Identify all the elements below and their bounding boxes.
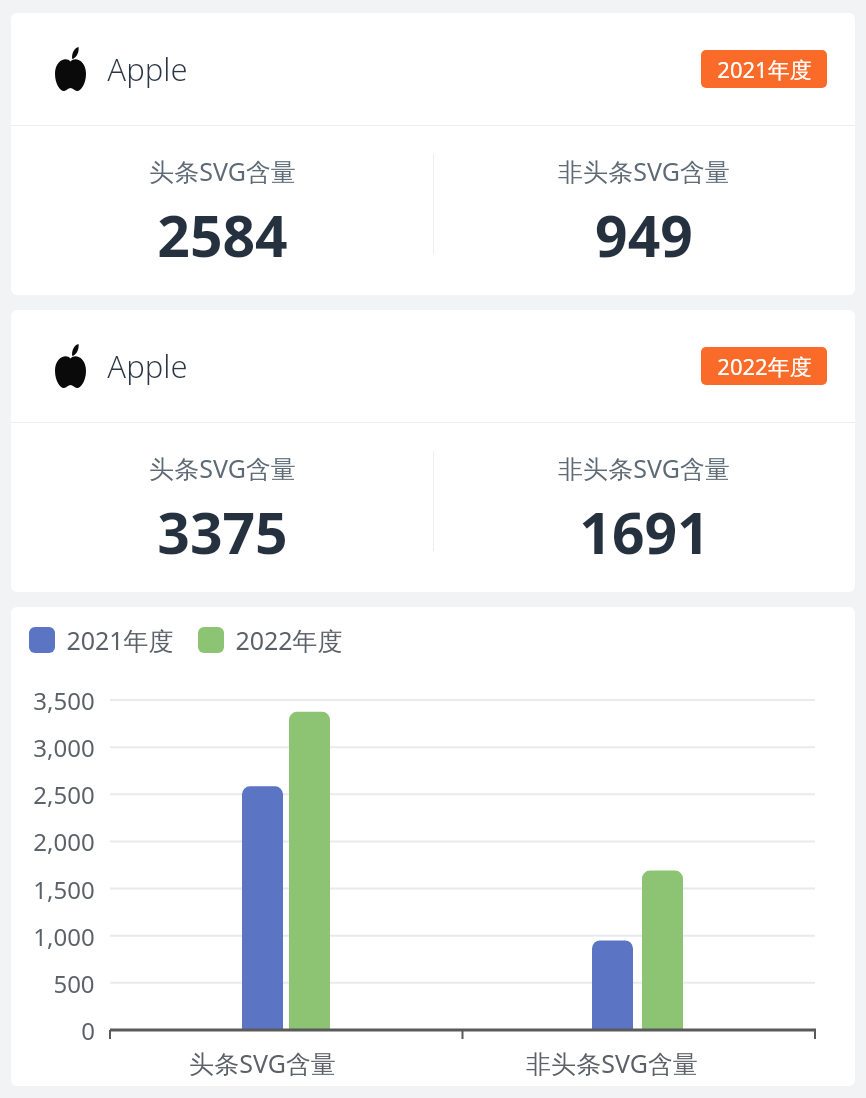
staticText: 3375 bbox=[157, 493, 288, 571]
staticText: 2021年度 bbox=[717, 54, 812, 84]
button[interactable]: 2022年度 bbox=[701, 347, 827, 385]
staticText: 1691 bbox=[579, 493, 710, 571]
staticText: Apple bbox=[107, 345, 188, 387]
staticText: 2022年度 bbox=[717, 351, 812, 381]
staticText: 2021年度 bbox=[66, 623, 174, 657]
staticText: 949 bbox=[595, 196, 693, 274]
staticText: 2,000 bbox=[33, 825, 95, 858]
button[interactable]: 非头条SVG含量 bbox=[433, 423, 855, 592]
staticText: 头条SVG含量 bbox=[149, 154, 296, 188]
other: Apple logo bbox=[55, 344, 86, 388]
staticText: 3,500 bbox=[33, 684, 95, 717]
staticText: 500 bbox=[53, 967, 95, 1000]
staticText: 3,000 bbox=[33, 731, 95, 764]
staticText: 头条SVG含量 bbox=[189, 1046, 336, 1080]
button[interactable]: 头条SVG含量 bbox=[11, 126, 433, 295]
staticText: Apple bbox=[107, 48, 188, 90]
button[interactable]: 头条SVG含量 bbox=[11, 423, 433, 592]
staticText: 1,000 bbox=[33, 920, 95, 953]
staticText: 2022年度 bbox=[235, 623, 343, 657]
button[interactable]: 2021年度 bbox=[701, 50, 827, 88]
staticText: 非头条SVG含量 bbox=[558, 154, 730, 188]
other: Apple logo bbox=[55, 47, 86, 91]
button[interactable]: Apple logo bbox=[11, 13, 855, 295]
staticText: 2584 bbox=[157, 196, 288, 274]
staticText: 非头条SVG含量 bbox=[526, 1046, 698, 1080]
staticText: 1,500 bbox=[33, 873, 95, 906]
button[interactable]: 非头条SVG含量 bbox=[433, 126, 855, 295]
staticText: 头条SVG含量 bbox=[149, 451, 296, 485]
staticText: 0 bbox=[81, 1014, 95, 1047]
staticText: 非头条SVG含量 bbox=[558, 451, 730, 485]
button[interactable]: Apple logo bbox=[11, 310, 855, 592]
button[interactable]: 2021年度 bbox=[11, 607, 855, 1086]
staticText: 2,500 bbox=[33, 778, 95, 811]
